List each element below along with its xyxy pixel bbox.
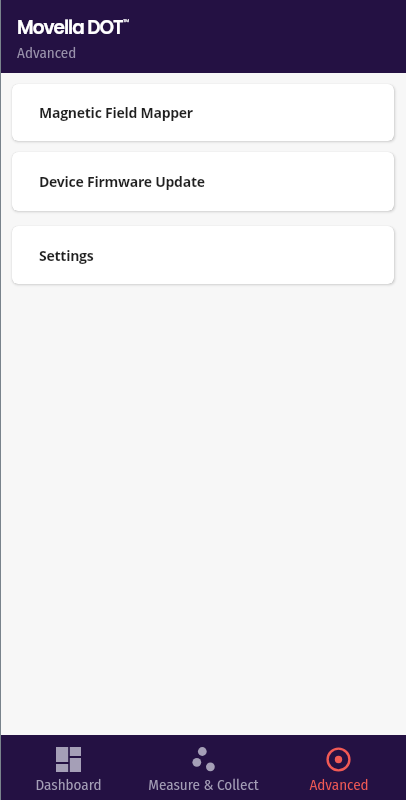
- button[interactable]: Advanced: [271, 735, 406, 800]
- staticText: Settings: [39, 246, 94, 265]
- staticText: ™: [123, 17, 130, 28]
- button[interactable]: Settings: [12, 226, 394, 284]
- button[interactable]: Magnetic Field Mapper: [12, 84, 394, 141]
- staticText: Device Firmware Update: [39, 172, 205, 191]
- staticText: Measure & Collect: [148, 776, 259, 794]
- staticText: Magnetic Field Mapper: [39, 103, 193, 122]
- button[interactable]: Device Firmware Update: [12, 152, 394, 211]
- staticText: Advanced: [17, 44, 77, 62]
- staticText: Advanced: [309, 776, 369, 794]
- staticText: Dashboard: [35, 776, 102, 794]
- button[interactable]: Measure & Collect: [136, 735, 271, 800]
- staticText: Movella DOT: [17, 15, 123, 41]
- button[interactable]: Dashboard: [0, 735, 136, 800]
